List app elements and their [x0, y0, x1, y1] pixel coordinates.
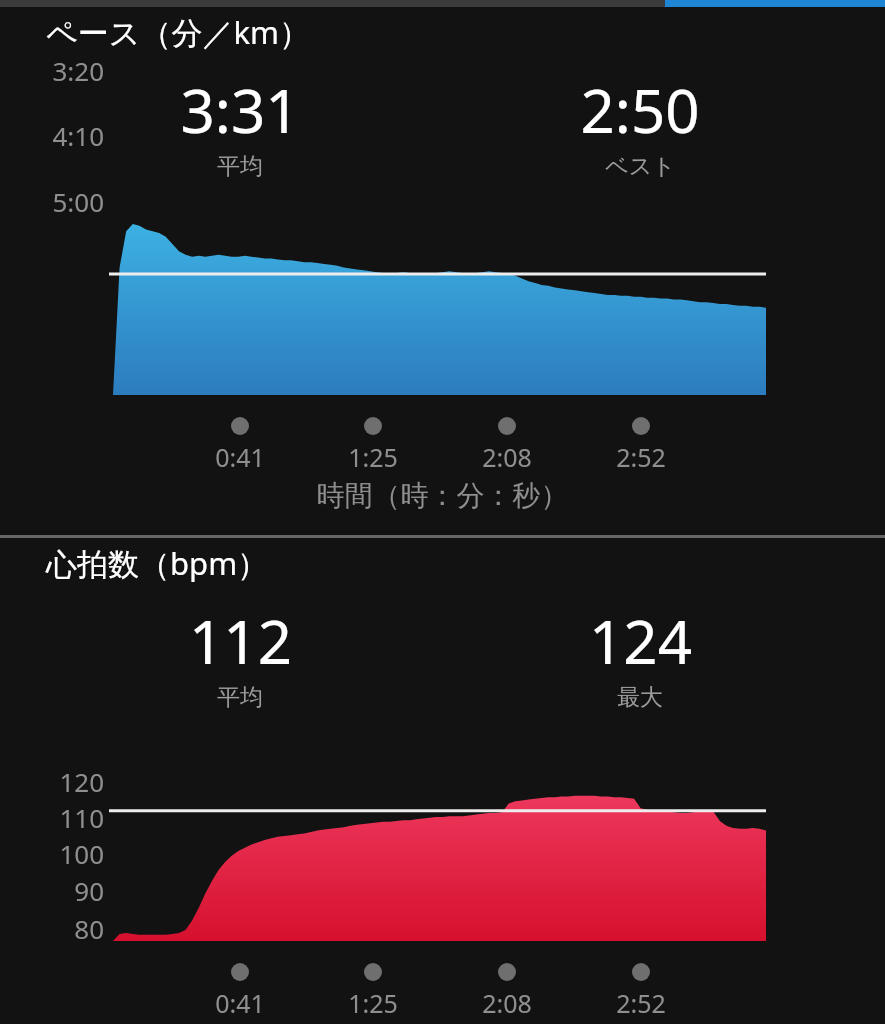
staticText: 2:08 [452, 986, 562, 1020]
staticText: 2:50 [580, 69, 700, 151]
staticText: 5:00 [34, 184, 104, 219]
staticText: 1:25 [318, 986, 428, 1020]
staticText: 110 [34, 800, 104, 835]
staticText: 3:31 [180, 69, 300, 151]
staticText: 最大 [617, 683, 663, 712]
staticText: 1:25 [318, 440, 428, 474]
staticText: 80 [34, 911, 104, 946]
staticText: 2:52 [586, 440, 696, 474]
staticText: 平均 [217, 152, 263, 181]
button[interactable]: 3:31 [40, 69, 440, 181]
staticText: 100 [34, 836, 104, 871]
staticText: 4:10 [34, 118, 104, 153]
staticText: 2:52 [586, 986, 696, 1020]
staticText: 120 [34, 764, 104, 799]
other: Activity progress [0, 0, 885, 7]
button[interactable]: 112 [40, 600, 440, 712]
staticText: 90 [34, 873, 104, 908]
staticText: ベスト [605, 152, 676, 181]
staticText: 時間（時：分：秒） [0, 478, 885, 513]
staticText: 0:41 [185, 986, 295, 1020]
button[interactable]: ペース（分／km） [0, 7, 885, 535]
button[interactable]: 124 [440, 600, 840, 712]
button[interactable]: 心拍数（bpm） [0, 538, 885, 1024]
staticText: 0:41 [185, 440, 295, 474]
staticText: 112 [189, 600, 292, 682]
staticText: ペース（分／km） [46, 11, 310, 53]
staticText: 2:08 [452, 440, 562, 474]
staticText: 3:20 [34, 53, 104, 88]
staticText: 平均 [217, 683, 263, 712]
button[interactable]: 2:50 [440, 69, 840, 181]
staticText: 124 [589, 600, 692, 682]
staticText: 心拍数（bpm） [46, 542, 269, 584]
